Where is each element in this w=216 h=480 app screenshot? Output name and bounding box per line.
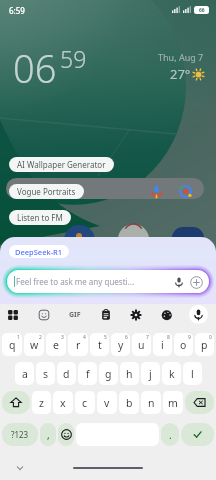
button[interactable]: Voice search	[147, 182, 165, 200]
staticText: i	[161, 338, 164, 352]
button[interactable]: Backspace	[185, 391, 214, 414]
button[interactable]: l	[183, 362, 202, 385]
button[interactable]: Listen to FM	[9, 210, 71, 225]
staticText: AI Wallpaper Generator	[17, 159, 106, 170]
staticText: ?123	[11, 429, 29, 440]
button[interactable]: .	[161, 423, 179, 446]
button[interactable]: n	[141, 391, 161, 414]
button[interactable]: ?123	[2, 423, 38, 446]
staticText: Feel free to ask me any questi...	[16, 276, 135, 287]
staticText: b	[126, 396, 133, 410]
staticText: 6	[125, 334, 128, 341]
staticText: k	[169, 367, 175, 381]
button[interactable]: Google Lens	[176, 182, 194, 200]
button[interactable]: Shift	[2, 391, 30, 414]
button[interactable]: Settings	[127, 306, 145, 324]
button[interactable]: Stickers	[35, 306, 53, 324]
staticText: Listen to FM	[17, 212, 63, 223]
staticText: Vogue Portraits	[17, 186, 76, 197]
staticText: r	[76, 338, 81, 352]
staticText: 9	[188, 334, 191, 341]
button[interactable]: k	[162, 362, 181, 385]
staticText: o	[180, 338, 187, 352]
button[interactable]: s	[36, 362, 55, 385]
button[interactable]: g	[99, 362, 118, 385]
button[interactable]: d	[57, 362, 76, 385]
staticText: g	[105, 367, 112, 381]
staticText: q	[9, 338, 16, 352]
button[interactable]: o	[174, 333, 193, 356]
button[interactable]: b	[119, 391, 139, 414]
staticText: 06	[13, 42, 57, 94]
button[interactable]: DeepSeek-R1	[9, 245, 69, 258]
staticText: h	[126, 367, 133, 381]
staticText: 66	[199, 7, 205, 14]
staticText: x	[60, 396, 66, 410]
staticText: 3	[61, 334, 64, 341]
button[interactable]: ,	[40, 423, 56, 446]
staticText: 59	[60, 43, 87, 74]
staticText: 5	[104, 334, 107, 341]
staticText: 27°	[170, 65, 191, 83]
staticText: d	[63, 367, 70, 381]
staticText: 1	[17, 334, 20, 341]
button[interactable]: j	[141, 362, 160, 385]
button[interactable]: x	[53, 391, 73, 414]
button[interactable]: i	[153, 333, 172, 356]
staticText: n	[148, 396, 155, 410]
button[interactable]: GIF	[66, 306, 84, 324]
staticText: y	[118, 338, 124, 352]
button[interactable]: a	[15, 362, 34, 385]
staticText: p	[201, 338, 208, 352]
staticText: 2	[39, 334, 42, 341]
staticText: t	[98, 338, 102, 352]
staticText: s	[43, 367, 49, 381]
button[interactable]: Hide keyboard	[14, 462, 26, 474]
staticText: 8	[167, 334, 170, 341]
button[interactable]: c	[75, 391, 95, 414]
staticText: w	[30, 338, 39, 352]
button[interactable]	[6, 178, 204, 199]
staticText: 0	[209, 334, 212, 341]
button[interactable]: Apps	[4, 306, 22, 324]
staticText: z	[39, 396, 44, 410]
button[interactable]: u	[132, 333, 151, 356]
button[interactable]: f	[78, 362, 97, 385]
button[interactable]: Clipboard	[97, 306, 115, 324]
staticText: j	[149, 367, 152, 381]
button[interactable]: e	[46, 333, 66, 356]
button[interactable]: y	[111, 333, 130, 356]
staticText: Thu, Aug 7	[158, 51, 204, 63]
staticText: e	[53, 338, 59, 352]
button[interactable]: q	[2, 333, 22, 356]
button[interactable]: Voice message	[173, 276, 185, 288]
button[interactable]: Themes	[158, 306, 176, 324]
button[interactable]: h	[120, 362, 139, 385]
button[interactable]: Add attachment	[189, 275, 203, 289]
button[interactable]: Feel free to ask me any questi...	[7, 270, 209, 293]
button[interactable]: AI Wallpaper Generator	[9, 157, 114, 172]
button[interactable]: Voice input	[189, 305, 208, 324]
button[interactable]: Vogue Portraits	[9, 184, 84, 199]
button[interactable]: v	[97, 391, 117, 414]
staticText: GIF	[69, 310, 81, 320]
button[interactable]: r	[68, 333, 88, 356]
button[interactable]: z	[32, 391, 51, 414]
button[interactable]: m	[163, 391, 183, 414]
staticText: c	[82, 396, 88, 410]
staticText: a	[22, 367, 28, 381]
button[interactable]: t	[90, 333, 109, 356]
staticText: u	[138, 338, 145, 352]
staticText: 7	[146, 334, 149, 341]
button[interactable]: p	[195, 333, 214, 356]
staticText: 4	[83, 334, 86, 341]
staticText: .	[169, 428, 172, 442]
staticText: DeepSeek-R1	[15, 247, 63, 257]
button[interactable]: w	[24, 333, 44, 356]
staticText: l	[191, 367, 194, 381]
button[interactable]: Enter	[181, 423, 214, 446]
staticText: m	[168, 396, 178, 410]
staticText: f	[86, 367, 90, 381]
button[interactable]: Emoji	[58, 423, 74, 446]
